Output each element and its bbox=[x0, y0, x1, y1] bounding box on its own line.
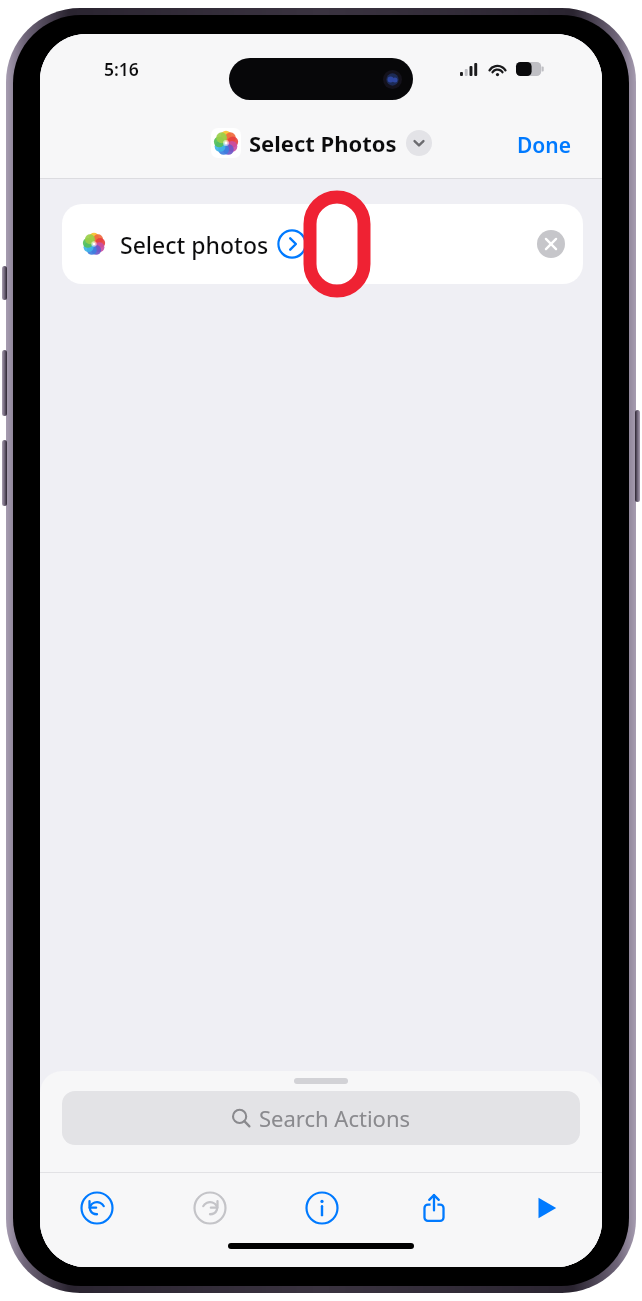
button[interactable]: More options bbox=[406, 130, 432, 156]
button[interactable]: Select photos bbox=[62, 204, 583, 284]
button[interactable]: Undo bbox=[40, 1173, 153, 1243]
staticText: Select Photos bbox=[249, 128, 397, 158]
staticText: Search Actions bbox=[259, 1103, 411, 1133]
button[interactable]: Done bbox=[509, 123, 580, 168]
button[interactable]: Run bbox=[490, 1173, 602, 1243]
button[interactable]: Info bbox=[266, 1173, 378, 1243]
button[interactable]: Remove action bbox=[537, 230, 565, 258]
button[interactable]: Share bbox=[378, 1173, 490, 1243]
button[interactable]: Redo bbox=[153, 1173, 266, 1243]
button[interactable]: Expand details bbox=[277, 229, 307, 259]
staticText: 5:16 bbox=[104, 57, 139, 81]
button[interactable]: Search Actions bbox=[62, 1091, 580, 1145]
staticText: Done bbox=[517, 131, 572, 160]
staticText: Select photos bbox=[120, 229, 269, 260]
